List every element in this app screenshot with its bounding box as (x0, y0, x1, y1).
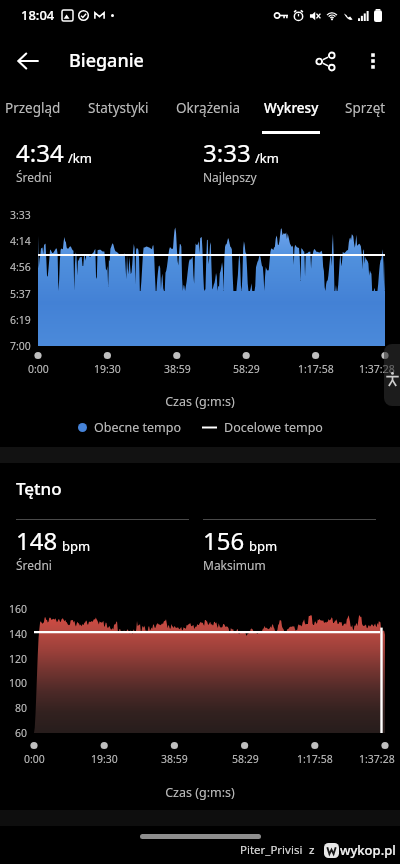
staticText: Docelowe tempo (224, 419, 323, 436)
staticText: 6:19 (10, 313, 31, 327)
staticText: 3:33 (203, 136, 251, 169)
staticText: 19:30 (91, 752, 118, 766)
staticText: 120 (9, 652, 28, 666)
button[interactable]: Statystyki (81, 91, 155, 134)
staticText: Obecne tempo (94, 419, 182, 436)
staticText: 18:04 (21, 6, 55, 24)
button[interactable]: Back (4, 37, 52, 85)
staticText: 38:59 (161, 752, 188, 766)
staticText: 4:56 (10, 260, 31, 274)
staticText: Czas (g:m:s) (0, 393, 400, 410)
staticText: 5:37 (10, 287, 31, 301)
staticText: 1:37:28 (359, 362, 395, 376)
staticText: Wykresy (264, 99, 319, 117)
staticText: bpm (249, 537, 278, 555)
staticText: Maksimum (203, 557, 266, 573)
staticText: 4:34 (16, 136, 64, 169)
button[interactable]: Przegląd (1, 91, 65, 134)
staticText: /km (68, 149, 92, 167)
staticText: bpm (62, 537, 91, 555)
staticText: 0:00 (28, 362, 49, 376)
button[interactable]: More options (349, 37, 397, 85)
button[interactable]: Wykresy (259, 91, 323, 134)
staticText: 80 (15, 701, 28, 715)
staticText: Tętno (16, 477, 62, 500)
staticText: 148 (16, 524, 58, 557)
staticText: Średni (16, 557, 52, 573)
staticText: Najlepszy (203, 169, 257, 185)
staticText: 140 (9, 627, 28, 641)
button[interactable]: Share (301, 37, 349, 85)
staticText: 160 (9, 602, 28, 616)
button[interactable]: Accessibility (384, 344, 400, 406)
staticText: z (309, 842, 315, 858)
staticText: 1:37:28 (359, 752, 395, 766)
staticText: 4:14 (10, 234, 31, 248)
staticText: 1:17:58 (297, 752, 333, 766)
staticText: 19:30 (94, 362, 121, 376)
button[interactable]: Okrążenia (171, 91, 245, 134)
staticText: 7:00 (10, 339, 31, 353)
staticText: Okrążenia (176, 99, 240, 117)
staticText: Statystyki (88, 99, 149, 117)
staticText: 100 (9, 676, 28, 690)
staticText: Przegląd (5, 99, 61, 117)
staticText: 1:17:58 (298, 362, 334, 376)
staticText: 3:33 (10, 208, 31, 222)
staticText: 156 (203, 524, 245, 557)
button[interactable]: Sprzęt (337, 91, 393, 134)
staticText: Sprzęt (345, 99, 386, 117)
staticText: Średni (16, 169, 52, 185)
staticText: 58:29 (232, 752, 259, 766)
staticText: Czas (g:m:s) (0, 784, 400, 801)
staticText: /km (255, 149, 279, 167)
staticText: Piter_Privisi (240, 842, 303, 858)
staticText: 58:29 (233, 362, 260, 376)
staticText: 0:00 (24, 752, 45, 766)
staticText: wykop.pl (340, 841, 396, 859)
staticText: Bieganie (69, 48, 144, 73)
staticText: 38:59 (164, 362, 191, 376)
staticText: 60 (15, 726, 28, 740)
